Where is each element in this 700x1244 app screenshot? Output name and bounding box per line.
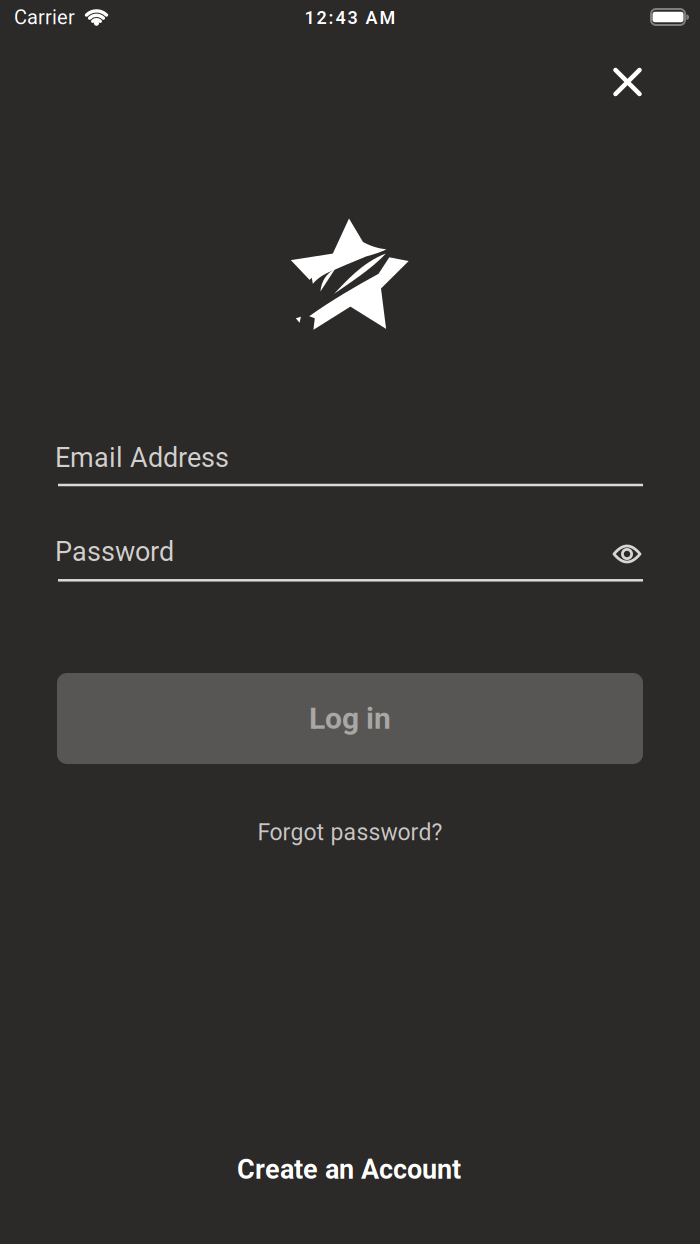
button[interactable]: Close [0,0,700,1244]
staticText: Create an Account [237,1154,461,1185]
button[interactable]: Create an Account [237,1154,461,1185]
button[interactable]: Log in [57,673,643,764]
button[interactable]: Forgot password? [257,819,442,846]
staticText: Email Address [55,442,229,473]
button[interactable]: Show password [607,538,647,570]
staticText: 12:43 AM [304,7,395,28]
staticText: Log in [309,701,391,736]
staticText: Forgot password? [257,819,442,846]
staticText: Carrier [14,6,75,29]
staticText: Password [55,536,174,567]
